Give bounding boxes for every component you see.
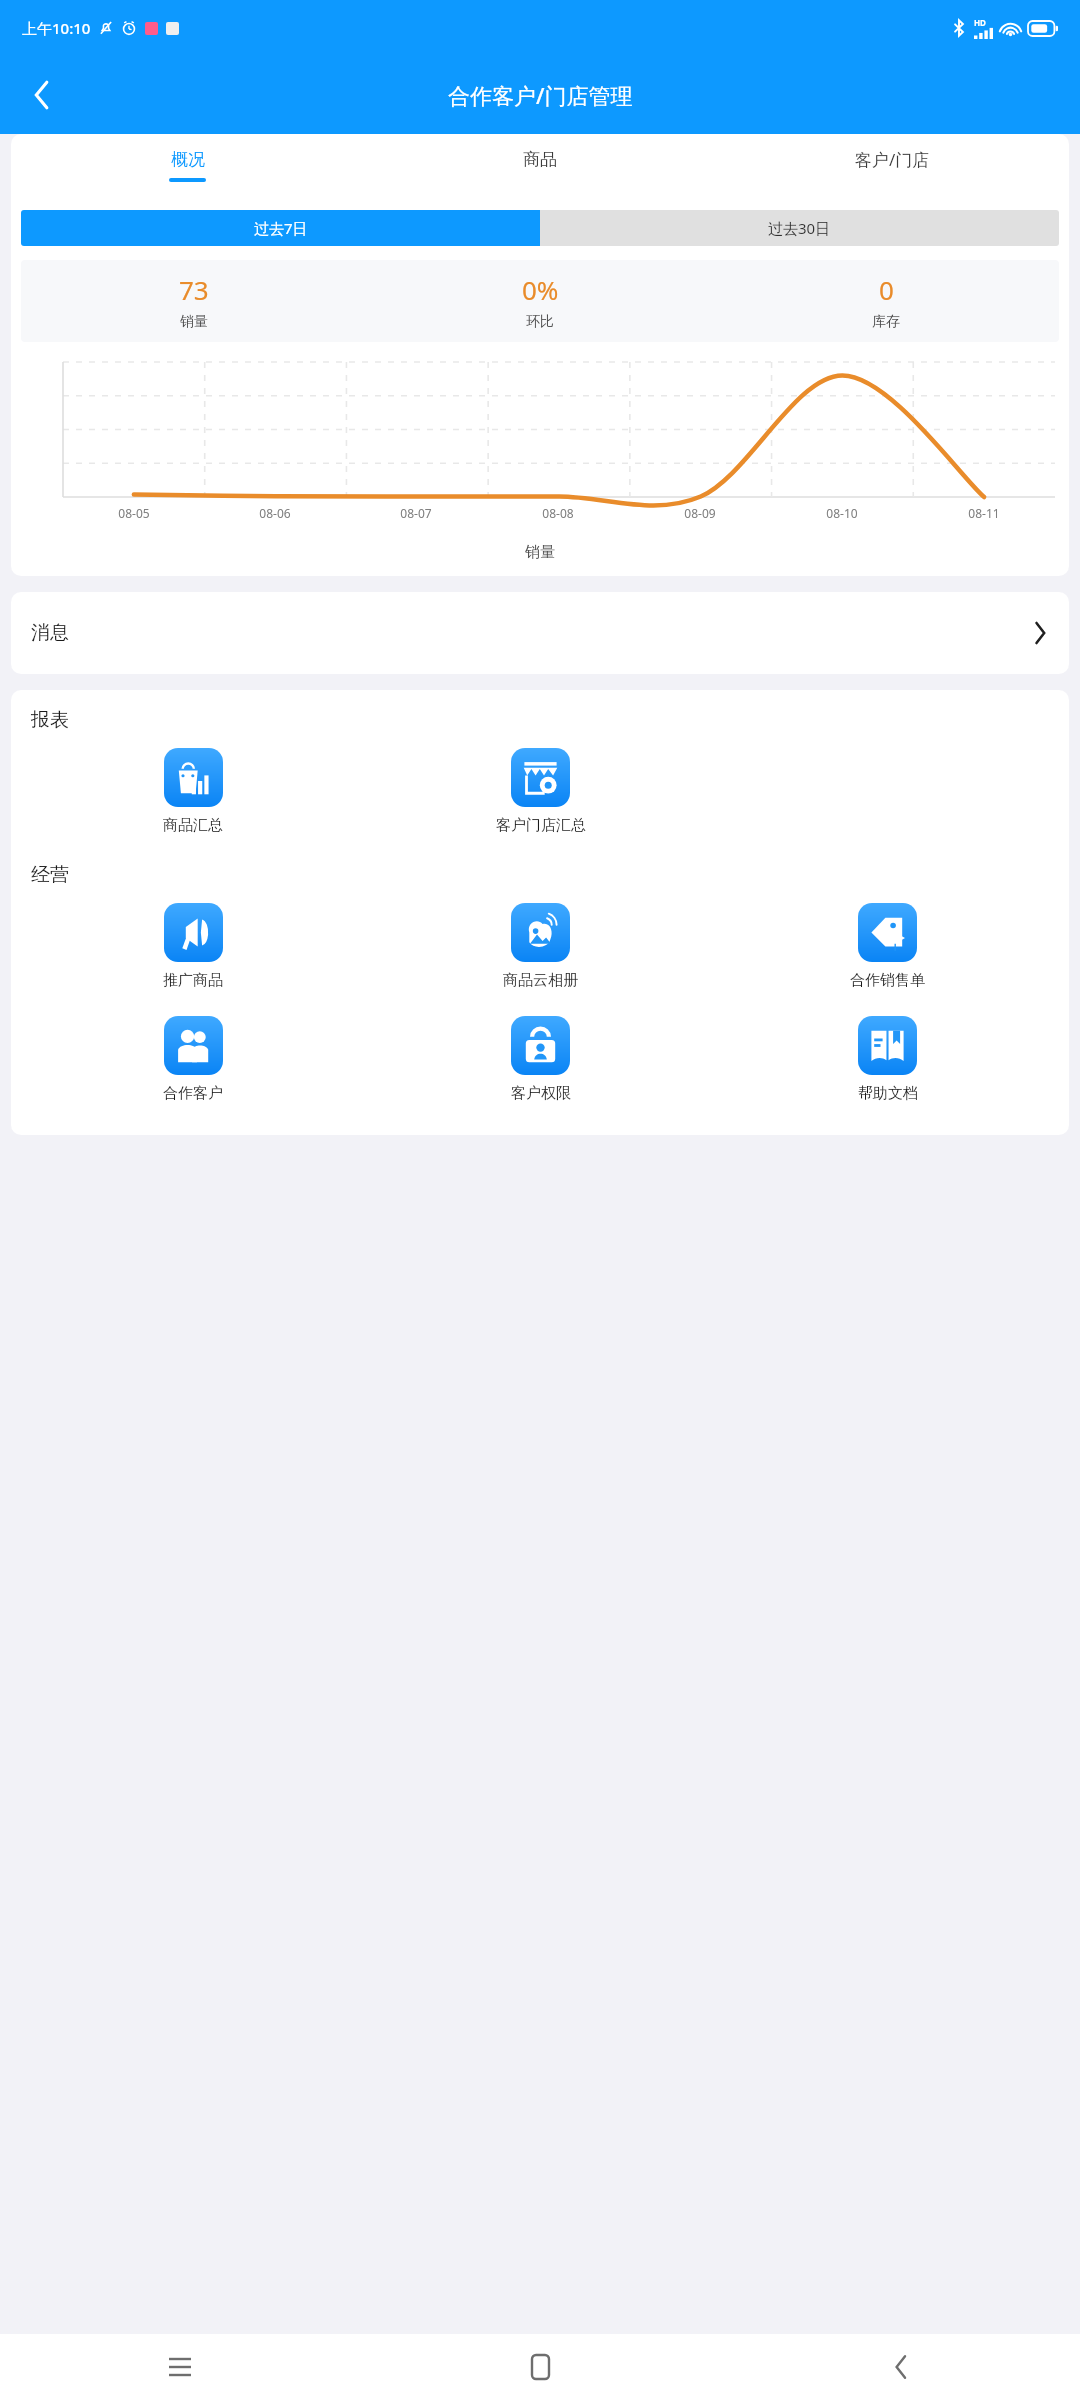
button[interactable]: 合作销售单 — [714, 897, 1061, 996]
staticText: HD — [974, 17, 986, 28]
staticText: 商品 — [523, 149, 557, 170]
staticText: 销量 — [11, 543, 1069, 562]
button[interactable]: 返回 — [720, 2334, 1080, 2400]
button[interactable]: 最近任务 — [0, 2334, 360, 2400]
staticText: 环比 — [526, 313, 554, 331]
button[interactable]: 客户门店汇总 — [367, 742, 714, 841]
button[interactable]: 概况 — [11, 134, 363, 196]
button[interactable]: 73 — [21, 272, 367, 331]
button[interactable]: 消息 — [11, 592, 1069, 674]
staticText: 过去7日 — [254, 218, 308, 238]
staticText: 推广商品 — [163, 971, 223, 990]
button[interactable]: 帮助文档 — [714, 1010, 1061, 1109]
staticText: 报表 — [31, 708, 69, 732]
staticText: 客户门店汇总 — [496, 816, 586, 835]
staticText: 经营 — [31, 863, 69, 887]
staticText: 上午10:10 — [22, 18, 91, 38]
staticText: 合作销售单 — [850, 971, 925, 990]
button[interactable]: 商品云相册 — [367, 897, 714, 996]
staticText: 08-11 — [968, 505, 1000, 521]
staticText: 商品云相册 — [503, 971, 578, 990]
staticText: 08-07 — [400, 505, 432, 521]
button[interactable]: 主页 — [360, 2334, 720, 2400]
button[interactable]: 过去7日 — [21, 210, 540, 246]
staticText: 0% — [522, 272, 559, 307]
staticText: 08-09 — [684, 505, 716, 521]
staticText: 08-06 — [259, 505, 291, 521]
staticText: 客户/门店 — [855, 148, 930, 171]
staticText: 客户权限 — [511, 1084, 571, 1103]
staticText: 库存 — [872, 313, 900, 331]
staticText: 08-10 — [826, 505, 858, 521]
button[interactable]: 返回 — [14, 67, 70, 123]
staticText: 过去30日 — [768, 218, 831, 238]
staticText: 0 — [879, 272, 894, 307]
staticText: 合作客户 — [163, 1084, 223, 1103]
staticText: 08-08 — [542, 505, 574, 521]
staticText: 08-05 — [118, 505, 150, 521]
staticText: 帮助文档 — [858, 1084, 918, 1103]
button[interactable]: 合作客户 — [19, 1010, 367, 1109]
staticText: 商品汇总 — [163, 816, 223, 835]
staticText: 消息 — [31, 621, 69, 645]
button[interactable]: 过去30日 — [540, 210, 1059, 246]
staticText: 合作客户/门店管理 — [448, 80, 633, 110]
button[interactable]: 0 — [713, 272, 1059, 331]
staticText: 概况 — [171, 149, 205, 170]
button[interactable]: 0% — [367, 272, 713, 331]
button[interactable]: 客户/门店 — [716, 134, 1069, 196]
staticText: 销量 — [180, 313, 208, 331]
staticText: 73 — [179, 272, 209, 307]
button[interactable]: 推广商品 — [19, 897, 367, 996]
button[interactable]: 商品汇总 — [19, 742, 367, 841]
button[interactable]: 客户权限 — [367, 1010, 714, 1109]
button[interactable]: 商品 — [363, 134, 716, 196]
